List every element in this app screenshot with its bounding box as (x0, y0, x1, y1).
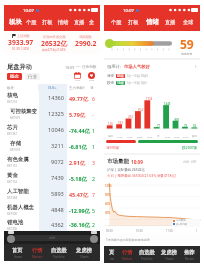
button[interactable]: Add (90, 235, 98, 243)
button[interactable]: 个股 (26, 19, 37, 26)
button[interactable]: 机器人概念 (4, 202, 100, 218)
staticText: 涨990家 (106, 145, 120, 150)
button[interactable]: 全 (89, 19, 95, 26)
button[interactable]: 行情 (31, 247, 44, 259)
button[interactable]: 存储 (4, 138, 100, 154)
staticText: 12325 (48, 110, 64, 118)
staticText: -74.44亿 (69, 127, 90, 134)
button[interactable]: 龙虎榜 (160, 249, 178, 261)
button[interactable]: 打板 (128, 19, 139, 26)
staticText: 2 (92, 221, 95, 228)
button[interactable]: 概念 (7, 73, 22, 80)
button[interactable]: 个股 (111, 19, 122, 26)
button[interactable]: 推荐 (183, 249, 196, 261)
staticText: 5-7% (183, 135, 189, 138)
staticText: 跌2037家 (182, 145, 198, 150)
staticText: -6.81亿 (69, 143, 87, 150)
staticText: 59 (180, 36, 194, 52)
staticText: 情绪 (58, 19, 69, 26)
staticText: 2 (92, 175, 95, 182)
staticText: 90% (105, 193, 111, 197)
staticText: 打板 (42, 19, 53, 26)
staticText: Portfolio (53, 255, 65, 259)
button[interactable]: 行业 (25, 73, 40, 80)
button[interactable]: 直播 (165, 19, 176, 26)
staticText: 推荐 (184, 249, 195, 256)
button[interactable]: 打板 (42, 19, 53, 26)
button[interactable]: 核电 (4, 90, 100, 106)
button[interactable]: 有色金属 (4, 154, 100, 170)
staticText: 跌停 (107, 81, 115, 86)
staticText: (含一字板 25家) (127, 74, 149, 78)
staticText: 5-7% (127, 135, 133, 138)
button[interactable]: 情绪 (146, 18, 159, 26)
staticText: 1443 (164, 102, 171, 106)
staticText: 机器人概念 (7, 204, 34, 211)
staticText: 强度+ (48, 85, 57, 90)
staticText: 7439 (51, 174, 64, 182)
staticText: 881575 (10, 116, 21, 120)
staticText: 3-5% (137, 135, 143, 138)
staticText: 日历 (75, 79, 81, 81)
button[interactable]: 龙虎榜 (75, 247, 93, 259)
staticText: 10:30 (136, 229, 143, 233)
button[interactable]: 行情 (121, 249, 134, 261)
staticText: 3 (92, 159, 95, 166)
button[interactable]: 页 (108, 249, 116, 261)
staticText: 温度计: (107, 63, 122, 69)
button[interactable]: 情绪 (58, 19, 69, 26)
button[interactable]: 自选股 (138, 249, 156, 261)
staticText: 881500 (7, 212, 18, 216)
staticText: 2.91亿 (69, 159, 86, 166)
staticText: 打板 (128, 19, 139, 26)
button[interactable]: 板块 (9, 18, 22, 26)
staticText: - (92, 111, 94, 118)
button[interactable]: 人工智能 (4, 186, 100, 202)
button[interactable]: Voice (7, 235, 15, 243)
staticText: 1 (92, 127, 95, 134)
staticText: 较昨4714亿(1.63% (42, 48, 66, 52)
staticText: 核电 (7, 92, 18, 99)
button[interactable]: 首页 (11, 247, 24, 259)
staticText: 锂电池 (7, 219, 24, 226)
staticText: 涨跌家数 (79, 35, 92, 39)
staticText: 板块 (9, 18, 22, 26)
button[interactable]: 可控核聚变 (4, 106, 100, 122)
button[interactable]: Favorite (88, 72, 95, 81)
staticText: 分时 日K (183, 160, 197, 164)
staticText: 主力净额↑ (69, 86, 86, 90)
staticText: Charts (165, 257, 174, 261)
staticText: 涨 (90, 86, 94, 90)
button[interactable]: 直播 (74, 19, 85, 26)
staticText: 71 (157, 124, 161, 128)
staticText: Portfolio (141, 257, 153, 261)
button[interactable]: 全球 (183, 19, 194, 26)
button[interactable]: 锂电池 (4, 218, 100, 231)
staticText: 1754 (146, 97, 153, 101)
staticText: Recom (185, 257, 194, 261)
staticText: 沪深 | 实际量能 26532亿 (107, 167, 145, 172)
button[interactable]: 搜索 (13, 235, 91, 241)
button[interactable]: 温度计: (107, 62, 197, 70)
staticText: 7-9% (117, 135, 123, 138)
button[interactable]: 自选股 (50, 247, 68, 259)
staticText: 页 (109, 249, 115, 256)
staticText: 自选股 (139, 249, 155, 256)
button[interactable]: 芯片 (4, 122, 100, 138)
staticText: 上证指数 (17, 34, 30, 38)
staticText: Markets (122, 257, 133, 261)
staticText: 7 (92, 191, 95, 198)
staticText: 881358 (7, 196, 18, 200)
staticText: 10:07 (23, 7, 34, 13)
button[interactable]: Calendar (74, 72, 81, 81)
staticText: 881216 (7, 100, 18, 104)
staticText: me (110, 257, 115, 261)
staticText: 6 (92, 95, 95, 102)
staticText: 全 (89, 19, 95, 26)
staticText: 0-3% (147, 135, 153, 138)
staticText: 2990.2 (75, 39, 97, 48)
staticText: -12.99亿 (69, 207, 90, 214)
button[interactable]: 黄金 (4, 170, 100, 186)
staticText: 沪深两市成交额 (43, 35, 66, 39)
staticText: Home (14, 255, 22, 259)
